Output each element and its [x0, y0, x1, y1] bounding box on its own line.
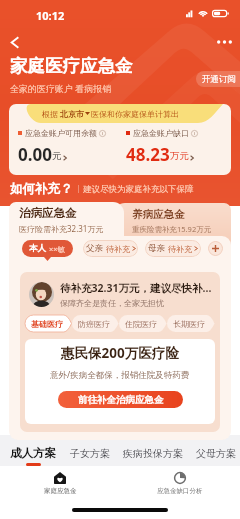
staticText: 应急金账户缺口	[133, 128, 189, 138]
button[interactable]: 养病应急金	[114, 203, 231, 245]
staticText: 家庭应急金	[44, 487, 77, 495]
staticText: 48.23	[126, 143, 170, 166]
button[interactable]: 母亲	[145, 240, 201, 257]
button[interactable]: 家庭应急金	[0, 466, 120, 500]
button[interactable]: 应急金缺口分析	[120, 466, 240, 500]
button[interactable]: 本人	[22, 240, 73, 257]
button[interactable]: More options	[212, 30, 236, 54]
staticText: 0.00	[18, 143, 52, 166]
staticText: 元	[52, 150, 62, 162]
staticText: 父亲	[86, 243, 103, 254]
staticText: 应急金账户可用余额	[25, 128, 97, 138]
staticText: 待补充	[168, 244, 192, 254]
staticText: 开通订阅	[202, 74, 236, 85]
staticText: 前往补全治病应急金	[78, 394, 164, 406]
staticText: 养病应急金	[132, 208, 185, 221]
staticText: 全家的医疗账户 看病报销	[10, 82, 112, 94]
staticText: 疾病投保方案	[123, 447, 183, 460]
button[interactable]: 治病应急金	[9, 202, 124, 242]
staticText: 如何补充？	[10, 181, 73, 197]
staticText: 万元	[170, 150, 189, 162]
button[interactable]: 住院医疗	[119, 315, 167, 332]
staticText: 家庭医疗应急金	[10, 55, 133, 77]
button[interactable]: 父亲	[83, 240, 138, 257]
staticText: ××敏	[49, 244, 66, 254]
button[interactable]: 前往补全治病应急金	[58, 391, 183, 408]
staticText: 待补充32.31万元，建议尽快补...	[60, 281, 212, 295]
staticText: 北京市	[60, 109, 84, 119]
staticText: 10:12	[36, 8, 65, 23]
staticText: 子女方案	[70, 447, 110, 460]
staticText: 父母方案	[196, 447, 236, 460]
staticText: 保障齐全是责任，全家无担忧	[60, 298, 164, 308]
staticText: 医疗险需补充32.31万元	[19, 223, 104, 234]
staticText: 基础医疗	[31, 319, 63, 329]
button[interactable]: 基础医疗	[25, 315, 72, 332]
staticText: 成人方案	[10, 446, 56, 460]
staticText: 惠民保200万医疗险	[61, 344, 179, 362]
staticText: 防癌医疗	[78, 319, 110, 329]
button[interactable]: 惠民保200万医疗险	[25, 339, 215, 424]
button[interactable]: 父母方案	[196, 447, 236, 466]
staticText: 应急金缺口分析	[157, 487, 203, 495]
button[interactable]: 根据	[9, 104, 231, 175]
staticText: 待补充	[106, 244, 130, 254]
button[interactable]: Add family member	[208, 241, 223, 256]
staticText: 住院医疗	[125, 319, 157, 329]
staticText: 根据	[42, 109, 58, 119]
staticText: 长期医疗	[173, 319, 205, 329]
button[interactable]: 长期医疗	[167, 315, 215, 332]
staticText: 意外/疾病全都保，报销住院及特药费	[50, 369, 190, 381]
button[interactable]: Back	[3, 30, 27, 54]
button[interactable]: 防癌医疗	[72, 315, 119, 332]
button[interactable]: 开通订阅	[196, 71, 240, 87]
staticText: 治病应急金	[19, 206, 77, 220]
button[interactable]: 疾病投保方案	[123, 447, 183, 466]
staticText: 医保和你家庭保单计算出	[91, 109, 179, 119]
staticText: 母亲	[148, 243, 165, 254]
staticText: 本人	[29, 243, 46, 254]
staticText: 建议尽快为家庭补充以下保障	[83, 184, 194, 195]
button[interactable]: 成人方案	[10, 446, 56, 466]
button[interactable]: 子女方案	[70, 447, 110, 466]
staticText: 重疾险需补充15.92万元	[132, 224, 212, 234]
